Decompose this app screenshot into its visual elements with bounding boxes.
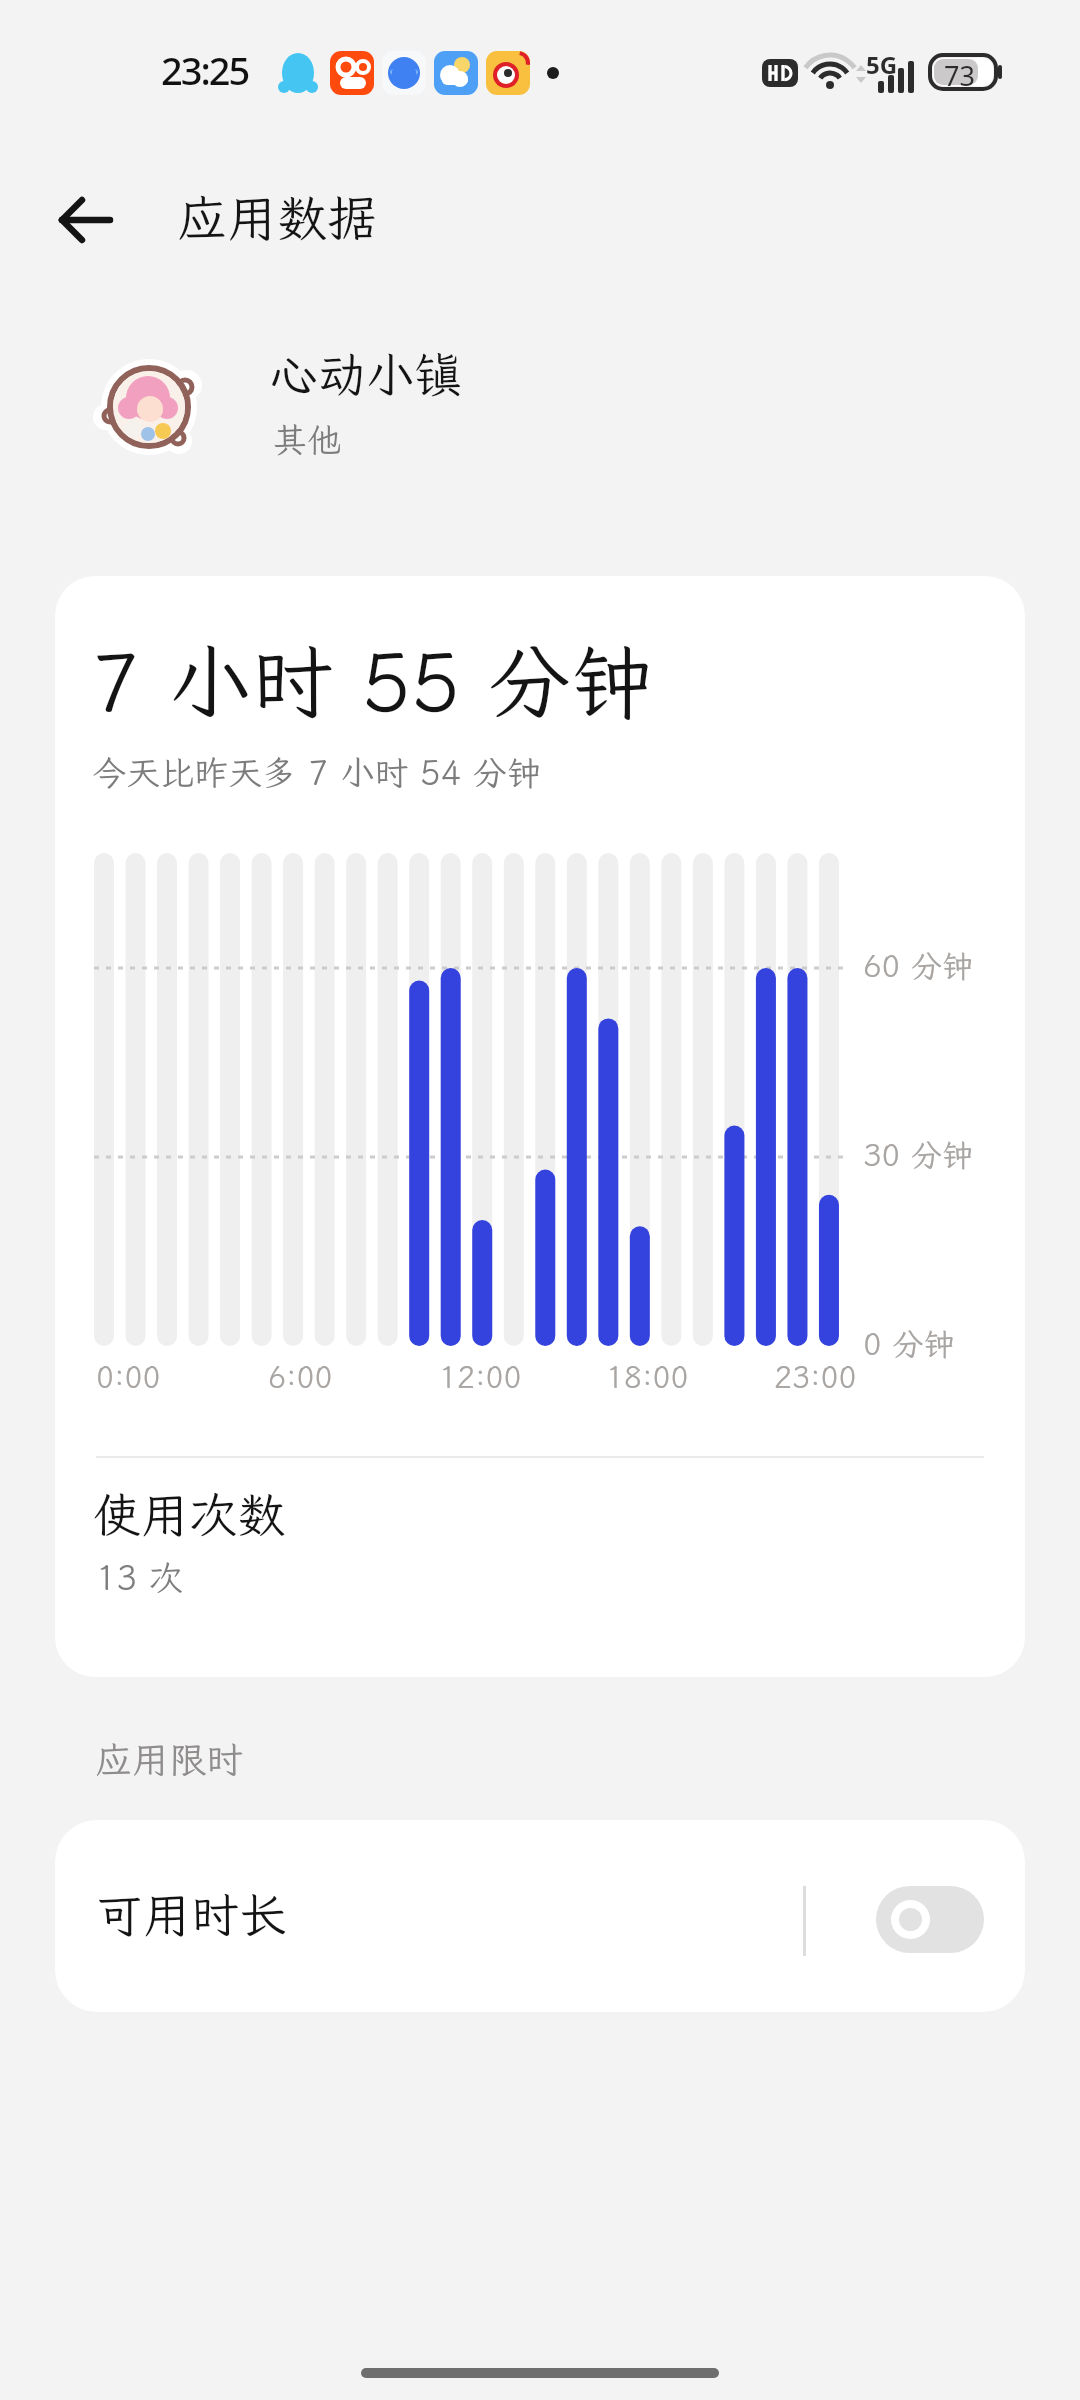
staticText: 0:00 xyxy=(96,1357,161,1397)
staticText: 6:00 xyxy=(268,1357,333,1397)
staticText: 23:25 xyxy=(161,44,249,96)
staticText: 12:00 xyxy=(439,1357,522,1397)
staticText: 30 分钟 xyxy=(863,1134,974,1175)
staticText: 可用时长 xyxy=(95,1882,288,1945)
button[interactable] xyxy=(876,1886,984,1953)
staticText: 0 分钟 xyxy=(863,1323,955,1364)
button[interactable]: 可用时长 xyxy=(55,1820,1025,2012)
staticText: 5G xyxy=(866,48,898,81)
staticText: 23:00 xyxy=(774,1357,857,1397)
button[interactable] xyxy=(48,182,124,258)
staticText: 其他 xyxy=(273,417,341,462)
staticText: 应用数据 xyxy=(177,184,377,250)
staticText: 60 分钟 xyxy=(863,945,974,986)
staticText: 18:00 xyxy=(606,1357,689,1397)
staticText: 7 小时 55 分钟 xyxy=(91,626,653,734)
staticText: 13 次 xyxy=(96,1555,183,1600)
staticText: 今天比昨天多 7 小时 54 分钟 xyxy=(92,750,541,795)
staticText: 应用限时 xyxy=(95,1735,243,1784)
staticText: 心动小镇 xyxy=(270,342,463,405)
staticText: 使用次数 xyxy=(93,1482,286,1545)
staticText: 73 xyxy=(944,57,975,94)
